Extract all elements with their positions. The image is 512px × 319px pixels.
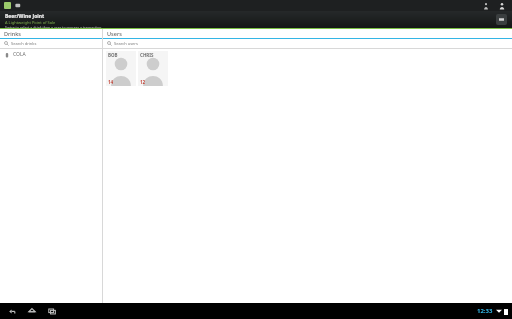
staticText: 12	[140, 79, 146, 85]
staticText: Search users	[114, 41, 138, 46]
staticText: Swipe to select a drink then a user to p…	[5, 25, 102, 28]
staticText: CHRIS	[140, 52, 154, 58]
button[interactable]: Back	[6, 305, 18, 317]
button[interactable]: CHRIS	[138, 51, 168, 86]
button[interactable]: COLA	[0, 49, 102, 60]
staticText: BOB	[108, 52, 118, 58]
staticText: 14	[108, 79, 114, 85]
button[interactable]: Settings	[496, 14, 507, 25]
button[interactable]: Add user	[481, 1, 491, 11]
staticText: Drinks	[4, 30, 22, 37]
button[interactable]: Home	[26, 305, 38, 317]
button[interactable]: Search users	[103, 39, 512, 48]
staticText: A Lightweight Point of Sale	[5, 20, 56, 25]
button[interactable]: Search drinks	[0, 39, 102, 48]
button[interactable]: BOB	[106, 51, 136, 86]
button[interactable]: Recent apps	[46, 305, 58, 317]
button[interactable]: Account	[497, 1, 507, 11]
staticText: Search drinks	[11, 41, 37, 46]
staticText: Users	[107, 30, 122, 37]
staticText: Beer/Wine Joint	[5, 13, 45, 20]
button[interactable]: App icon	[4, 2, 11, 9]
staticText: COLA	[13, 51, 26, 58]
staticText: 12:33	[477, 307, 493, 315]
